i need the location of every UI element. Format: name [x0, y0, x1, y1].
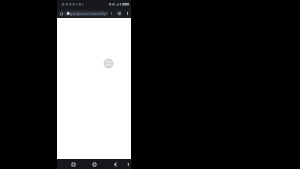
- button[interactable]: Switch tabs: [117, 11, 122, 16]
- staticText: google.com/search?q=%E3%83%A6%E3%83%BC: [70, 11, 108, 16]
- button[interactable]: Home: [59, 11, 64, 16]
- button[interactable]: Back: [112, 161, 119, 168]
- button[interactable]: Home: [91, 161, 98, 168]
- button[interactable]: More options: [125, 11, 130, 16]
- button[interactable]: Recent apps: [70, 161, 77, 168]
- button[interactable]: Voice search: [109, 11, 114, 16]
- button[interactable]: google.com/search?q=%E3%83%A6%E3%83%BC: [64, 11, 108, 16]
- button[interactable]: Keyboard: [126, 162, 131, 167]
